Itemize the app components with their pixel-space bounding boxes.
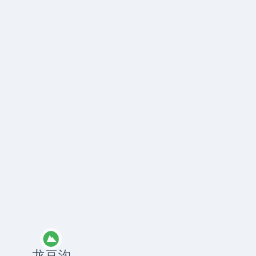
staticText: 龙豆沟: [32, 247, 71, 256]
button[interactable]: Longcanggou scenic area marker: [23, 229, 79, 256]
other: Longcanggou scenic area marker: [39, 227, 63, 251]
